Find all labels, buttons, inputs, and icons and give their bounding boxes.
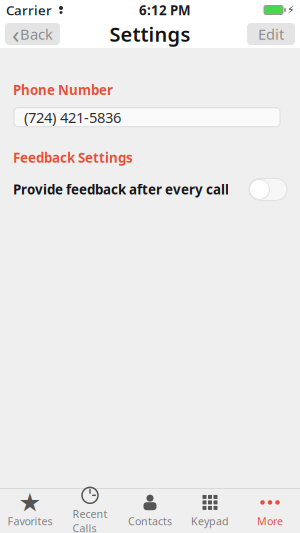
staticText: More (257, 514, 283, 528)
button[interactable]: Recent Calls (60, 489, 120, 533)
button[interactable]: Provide feedback after every call (0, 176, 300, 202)
staticText: Recent Calls (72, 507, 107, 533)
staticText: 6:12 PM (139, 1, 191, 19)
staticText: Favorites (7, 514, 52, 528)
staticText: ★ (18, 488, 41, 517)
staticText: (724) 421-5836 (24, 107, 121, 127)
button[interactable]: ‹ (5, 23, 60, 45)
staticText: Carrier (6, 1, 52, 19)
button[interactable]: Contacts (120, 489, 180, 533)
staticText: Provide feedback after every call (13, 181, 229, 198)
staticText: Settings (109, 21, 190, 47)
button[interactable]: ★ (0, 489, 60, 533)
staticText: Phone Number (13, 81, 113, 99)
staticText: ‹ (12, 18, 19, 50)
staticText: Keypad (191, 514, 229, 528)
staticText: ⚡︎ (287, 4, 294, 16)
staticText: Contacts (128, 514, 172, 528)
button[interactable]: Edit (247, 23, 295, 45)
staticText: Edit (258, 24, 284, 44)
button[interactable]: More (240, 489, 300, 533)
staticText: Feedback Settings (13, 149, 133, 166)
staticText: Back (20, 24, 53, 44)
button[interactable]: Keypad (180, 489, 240, 533)
